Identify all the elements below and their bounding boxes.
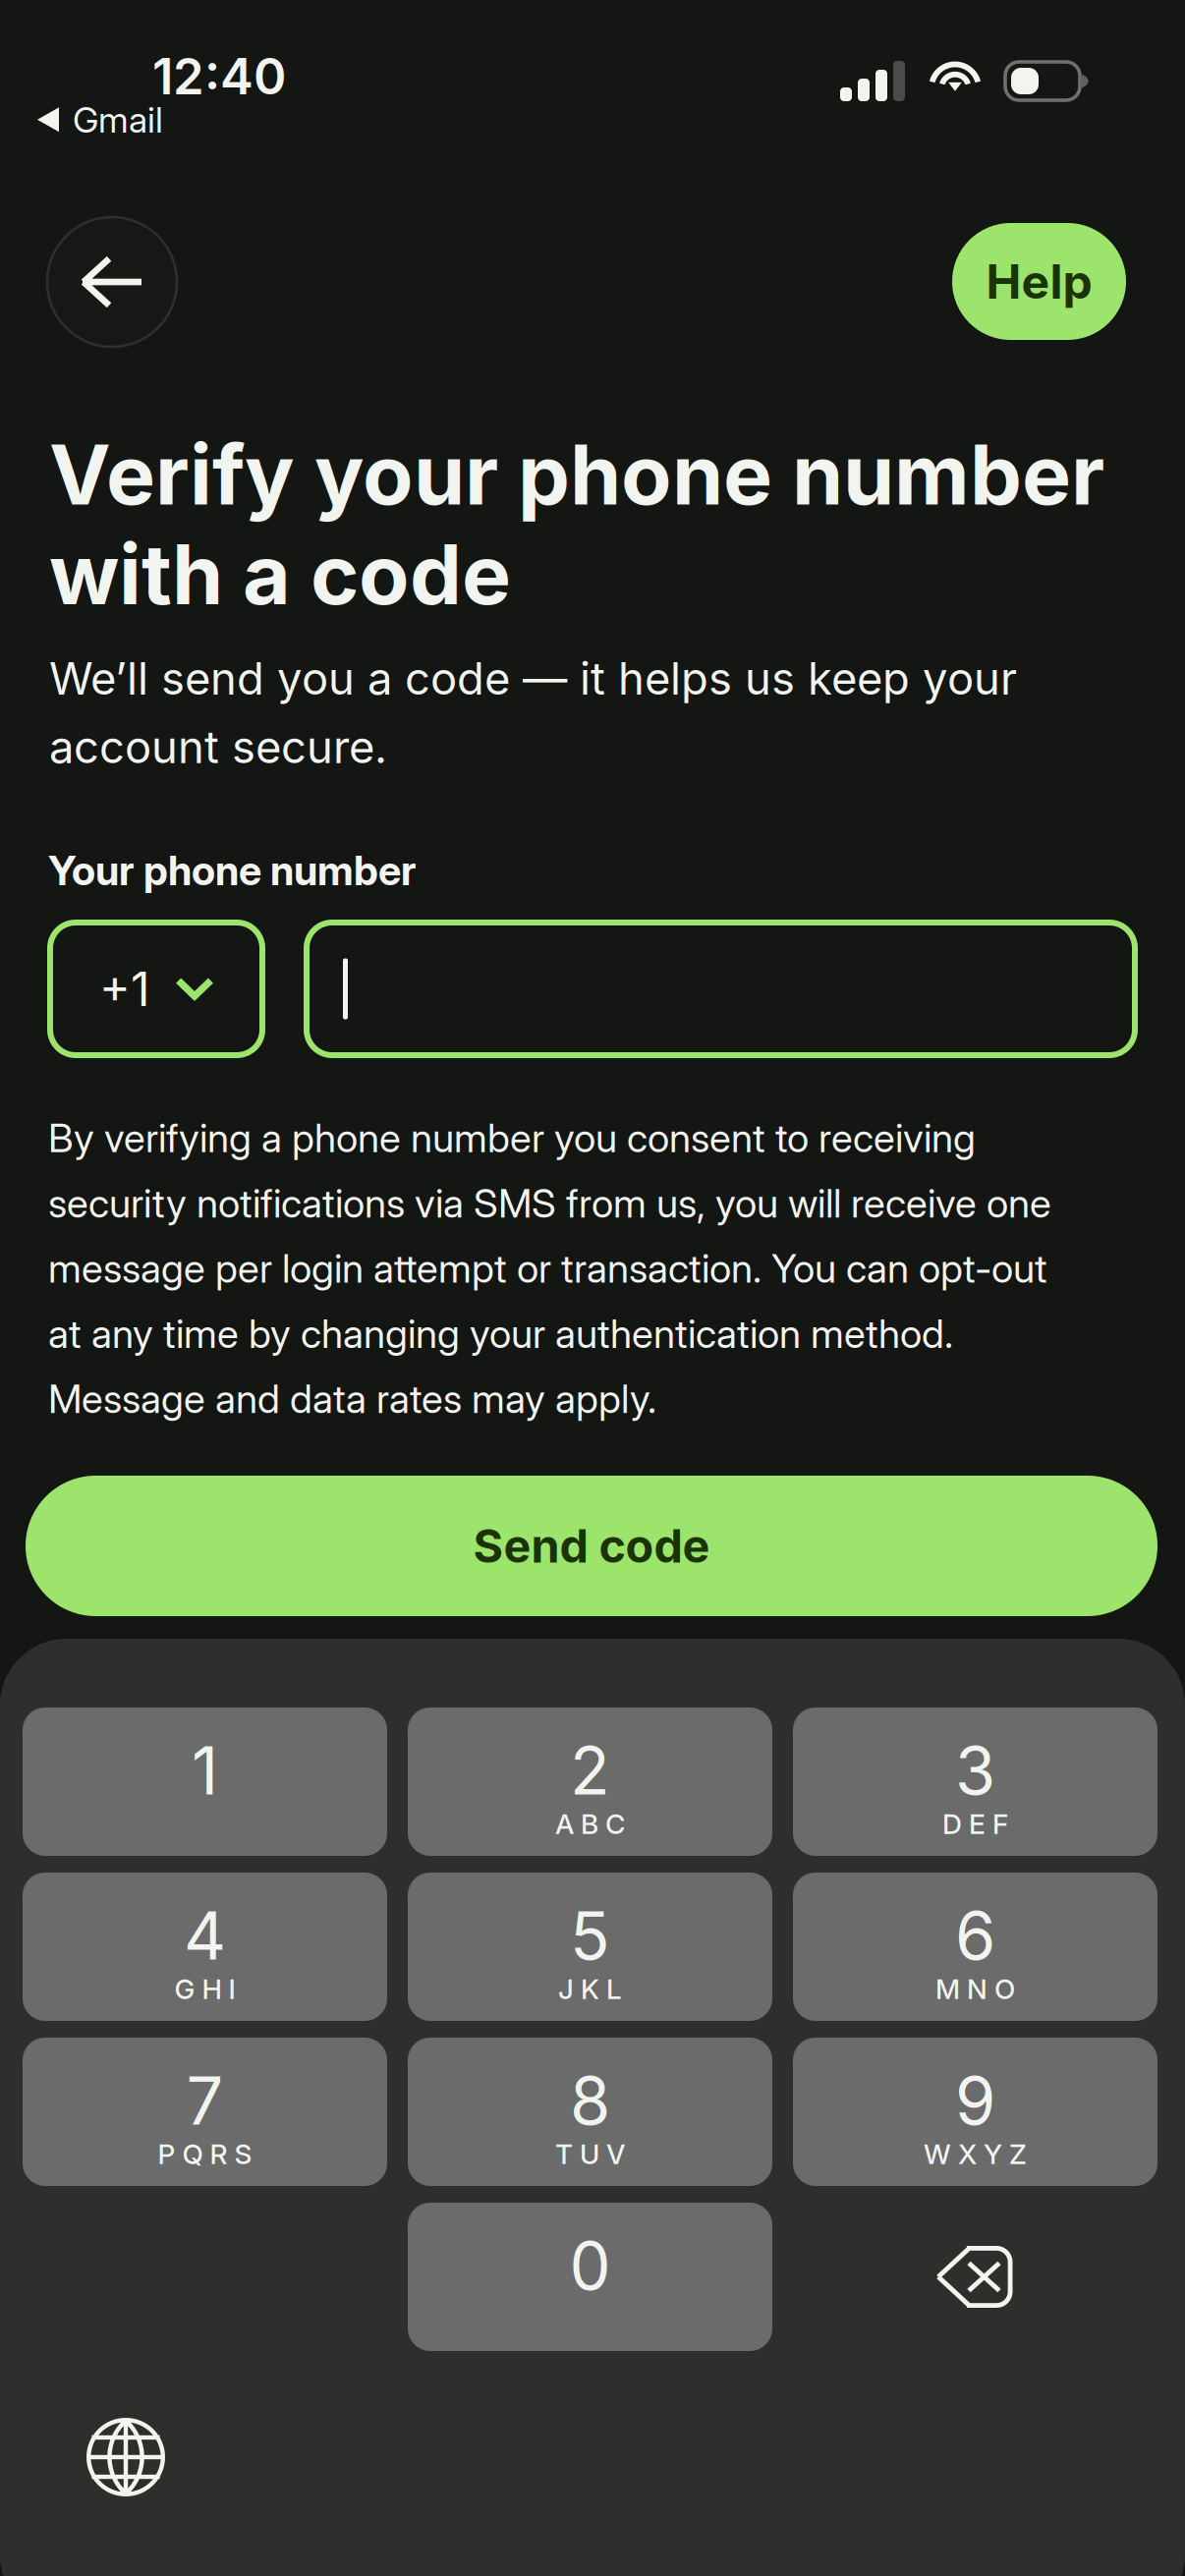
button[interactable]: 0 xyxy=(408,2203,772,2351)
button[interactable]: Next keyboard xyxy=(62,2399,190,2515)
button[interactable]: Phone number xyxy=(307,923,1135,1055)
staticText: By verifying a phone number you consent … xyxy=(48,1114,1051,1423)
staticText: Verify your phone number with a code xyxy=(49,424,1104,624)
staticText: 3 xyxy=(955,1731,995,1810)
staticText: Help xyxy=(986,253,1092,310)
staticText: 5 xyxy=(570,1896,610,1975)
button[interactable]: 6 xyxy=(793,1873,1157,2021)
button[interactable]: 8 xyxy=(408,2038,772,2186)
staticText: J K L xyxy=(558,1972,622,2006)
staticText: 12:40 xyxy=(152,46,286,106)
button[interactable]: 4 xyxy=(23,1873,387,2021)
staticText: G H I xyxy=(174,1972,235,2006)
staticText: 0 xyxy=(569,2226,611,2306)
staticText: A B C xyxy=(555,1807,625,1841)
button[interactable]: Help xyxy=(952,223,1126,340)
button[interactable]: Send code xyxy=(26,1476,1157,1616)
button[interactable]: Back xyxy=(47,217,177,347)
button[interactable]: 2 xyxy=(408,1708,772,1856)
staticText: 4 xyxy=(184,1896,226,1975)
button[interactable]: Delete xyxy=(793,2203,1157,2351)
staticText: 6 xyxy=(955,1896,995,1975)
button[interactable]: 9 xyxy=(793,2038,1157,2186)
staticText: W X Y Z xyxy=(924,2138,1027,2171)
staticText: M N O xyxy=(935,1972,1015,2006)
button[interactable]: 1 xyxy=(23,1708,387,1856)
staticText: Send code xyxy=(473,1518,710,1574)
staticText: We’ll send you a code — it helps us keep… xyxy=(49,651,1017,774)
button[interactable]: Country code +1 xyxy=(50,923,262,1055)
staticText: +1 xyxy=(99,960,150,1017)
staticText: 1 xyxy=(192,1731,218,1810)
staticText: 8 xyxy=(570,2061,610,2140)
staticText: T U V xyxy=(555,2138,625,2171)
button[interactable]: 5 xyxy=(408,1873,772,2021)
staticText: 9 xyxy=(955,2061,995,2140)
button[interactable]: 3 xyxy=(793,1708,1157,1856)
staticText: 7 xyxy=(186,2061,224,2140)
staticText: D E F xyxy=(942,1807,1008,1841)
staticText: Your phone number xyxy=(48,846,417,895)
staticText: P Q R S xyxy=(158,2138,252,2171)
staticText: Gmail xyxy=(73,98,163,141)
staticText: 2 xyxy=(570,1731,610,1810)
button[interactable]: 7 xyxy=(23,2038,387,2186)
